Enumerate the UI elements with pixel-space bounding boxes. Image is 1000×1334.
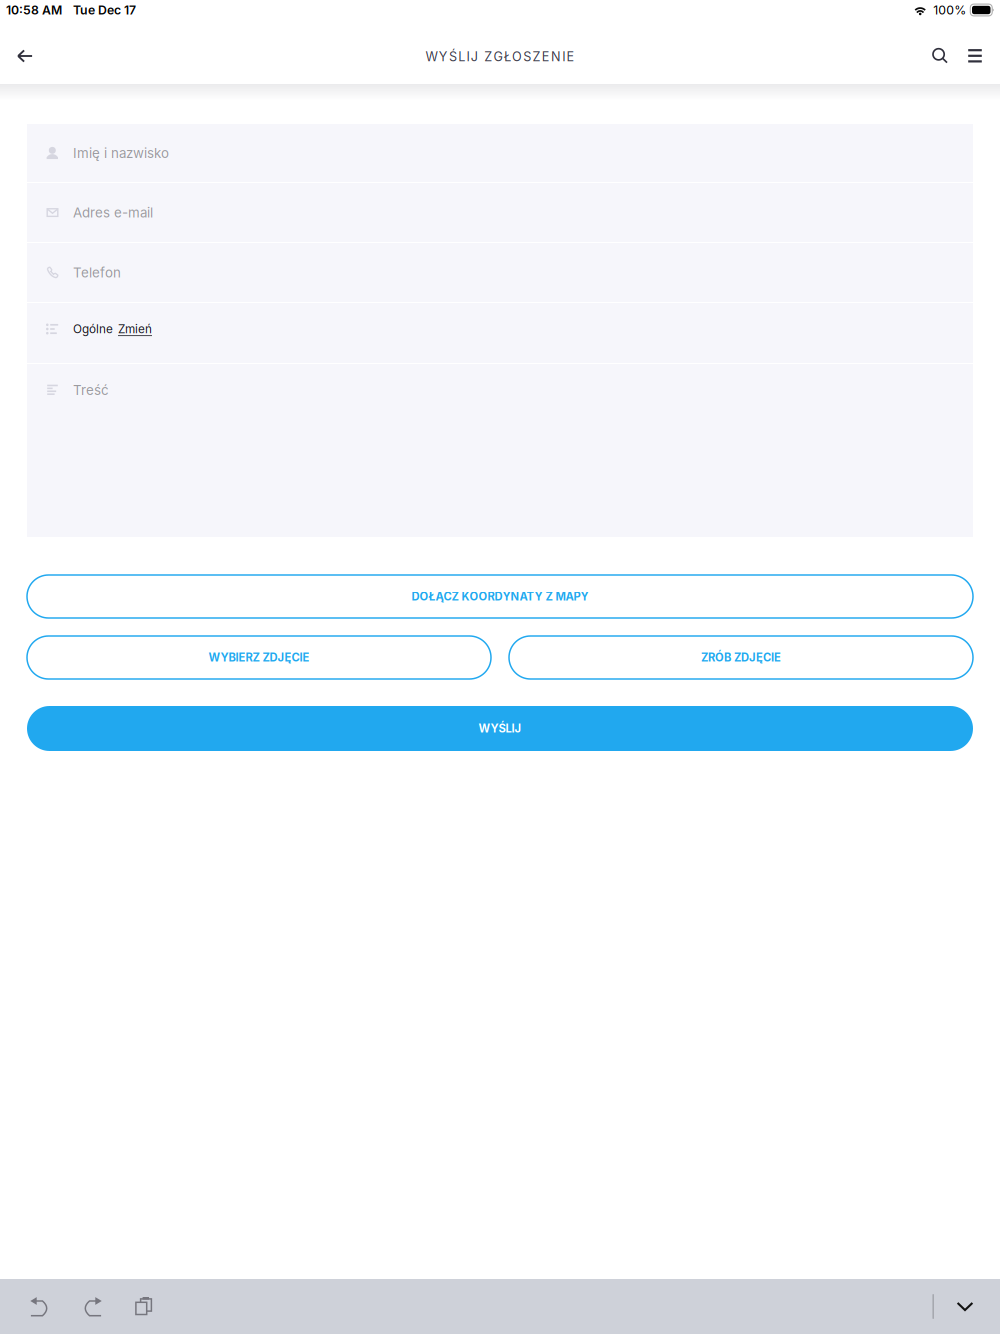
button[interactable]: Search <box>924 41 956 71</box>
staticText: Ogólne <box>73 322 113 336</box>
staticText: DOŁĄCZ KOORDYNATY Z MAPY <box>411 590 588 603</box>
button[interactable]: ZRÓB ZDJĘCIE <box>509 636 973 679</box>
staticText: WYBIERZ ZDJĘCIE <box>208 651 309 664</box>
staticText: Tue Dec 17 <box>73 3 136 17</box>
staticText: Treść <box>73 382 109 398</box>
staticText: WYŚLIJ ZGŁOSZENIE <box>425 49 574 64</box>
button[interactable]: Undo <box>14 1279 66 1334</box>
button[interactable]: Paste <box>118 1279 170 1334</box>
staticText: Imię i nazwisko <box>73 145 169 161</box>
staticText: Telefon <box>73 264 121 281</box>
staticText: 10:58 AM <box>6 3 62 17</box>
staticText: Zmień <box>118 322 152 336</box>
staticText: WYŚLIJ <box>478 722 521 735</box>
button[interactable]: Zmień <box>118 322 152 336</box>
button[interactable]: Back <box>0 41 50 71</box>
button[interactable]: Hide keyboard <box>934 1279 996 1334</box>
button[interactable]: Redo <box>66 1279 118 1334</box>
staticText: Adres e-mail <box>73 204 153 221</box>
staticText: 100% <box>933 3 966 17</box>
button[interactable]: WYŚLIJ <box>27 706 973 751</box>
button[interactable]: Menu <box>959 41 991 71</box>
staticText: ZRÓB ZDJĘCIE <box>701 651 781 664</box>
button[interactable]: DOŁĄCZ KOORDYNATY Z MAPY <box>27 575 973 618</box>
button[interactable]: WYBIERZ ZDJĘCIE <box>27 636 491 679</box>
